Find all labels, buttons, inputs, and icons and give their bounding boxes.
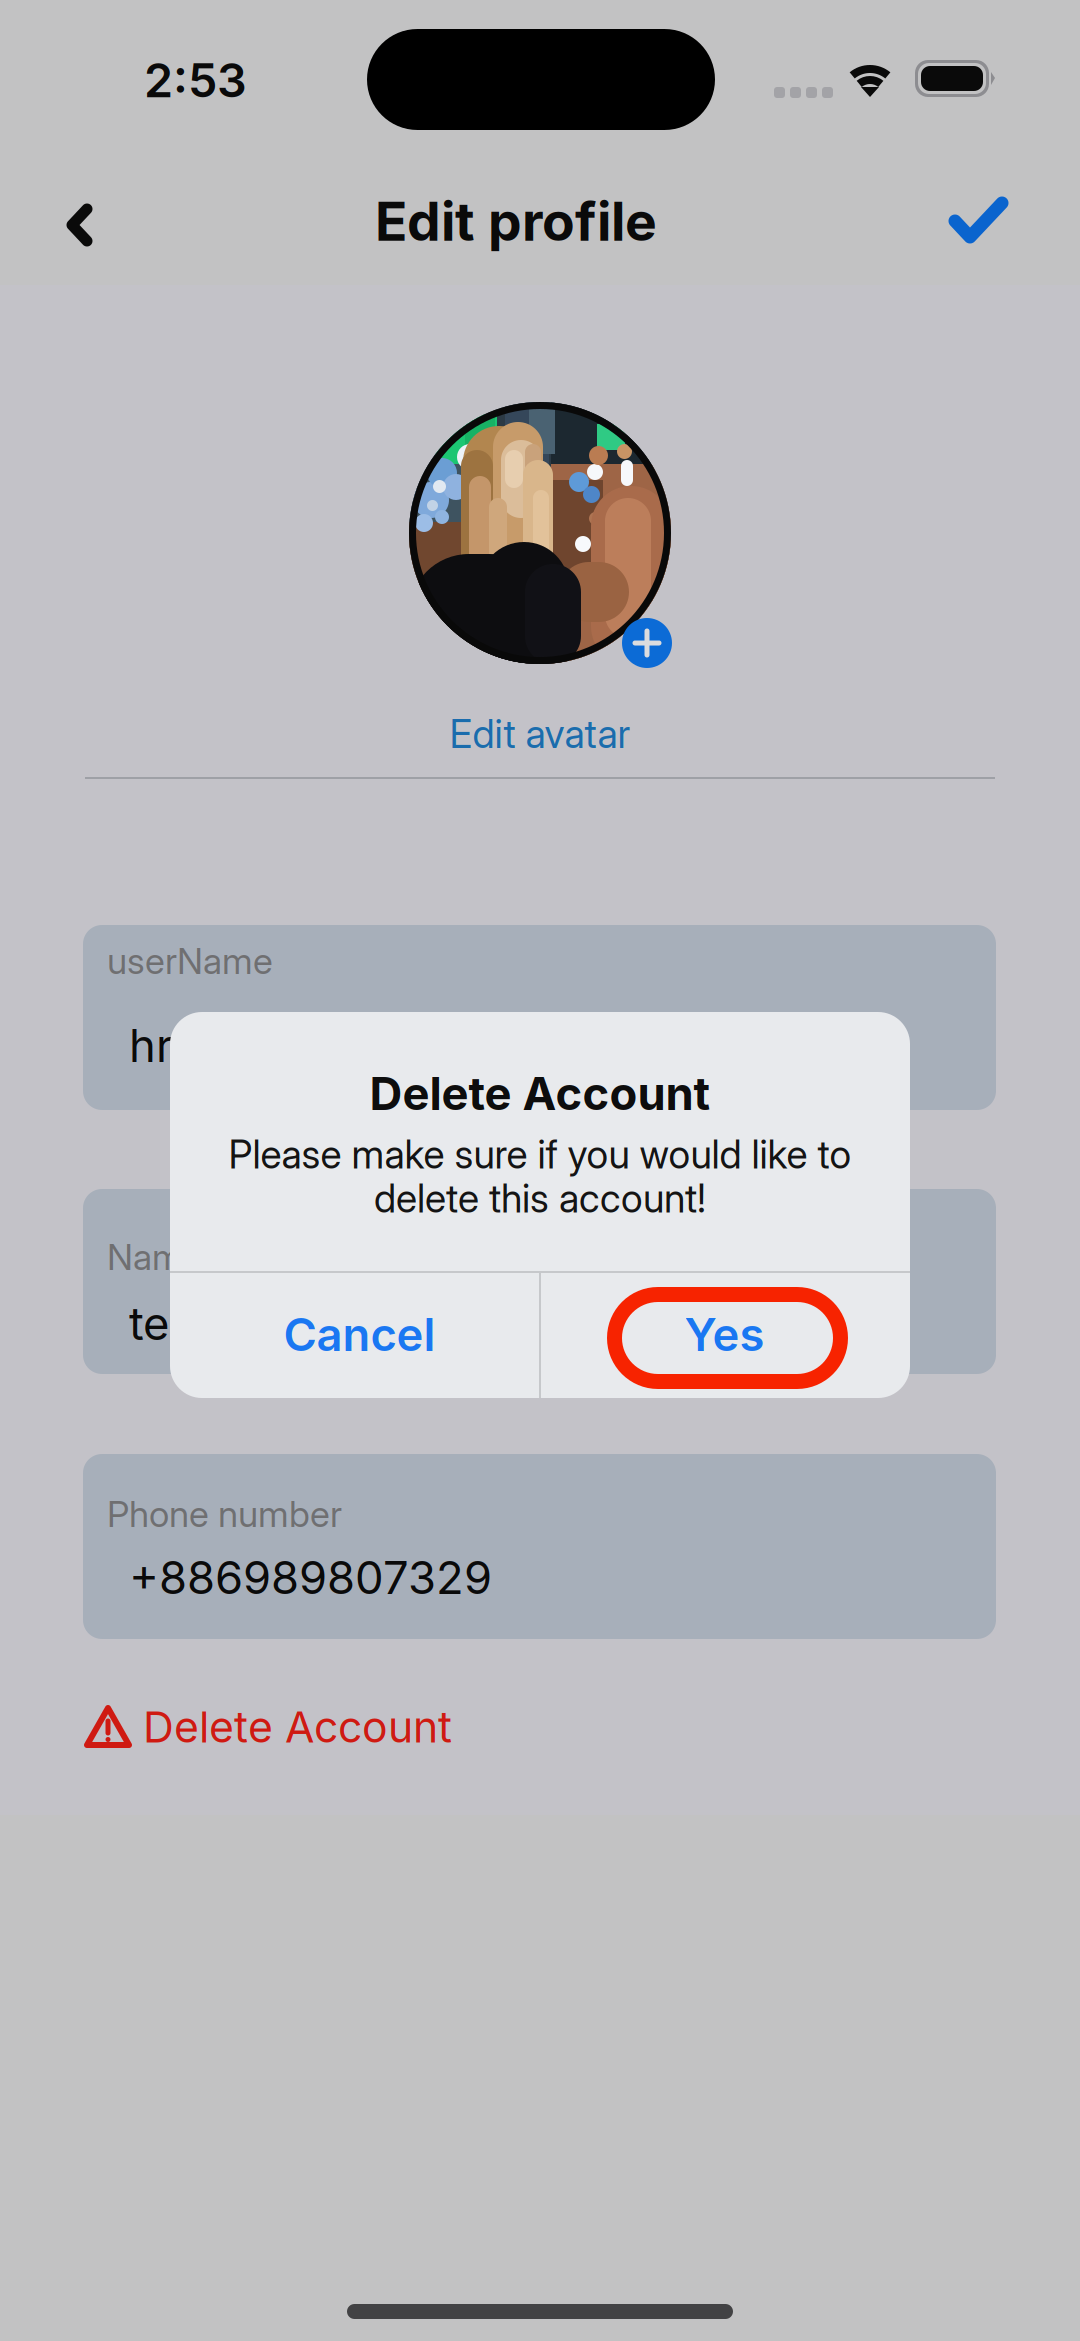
staticText: Please make sure if you would like to (228, 1131, 851, 1178)
button[interactable]: Phone number (83, 1454, 996, 1639)
button[interactable]: Back (0, 171, 116, 281)
staticText: te (129, 1296, 169, 1351)
button[interactable]: Save (932, 171, 1048, 281)
button[interactable]: Yes (539, 1271, 910, 1398)
staticText: Name (107, 1235, 203, 1279)
staticText: Edit profile (375, 189, 657, 253)
staticText: 2:53 (144, 52, 247, 108)
staticText: userName (107, 939, 273, 983)
staticText: Delete Account (143, 1701, 452, 1753)
button[interactable]: Name (83, 1189, 996, 1374)
button[interactable]: Delete Account (83, 1687, 643, 1767)
button[interactable]: userName (83, 925, 996, 1110)
staticText: +886989807329 (129, 1550, 492, 1605)
staticText: Delete Account (369, 1066, 710, 1121)
staticText: Phone number (107, 1492, 342, 1536)
staticText: hr (129, 1018, 173, 1073)
staticText: Yes (684, 1307, 764, 1362)
button[interactable]: Edit avatar (360, 701, 720, 767)
button[interactable]: Cancel (170, 1271, 539, 1398)
button[interactable]: Change profile photo (622, 618, 672, 668)
staticText: delete this account! (374, 1175, 706, 1222)
staticText: Edit avatar (449, 711, 630, 757)
staticText: Cancel (283, 1307, 435, 1362)
